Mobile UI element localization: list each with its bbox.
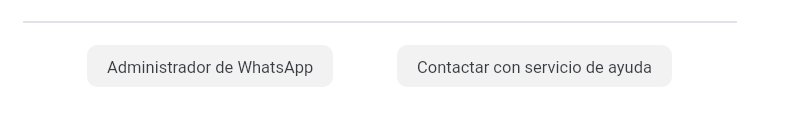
staticText: Administrador de WhatsApp [107,58,314,77]
staticText: Contactar con servicio de ayuda [417,58,652,77]
button[interactable]: Administrador de WhatsApp [87,45,333,87]
button[interactable]: Contactar con servicio de ayuda [397,45,672,87]
